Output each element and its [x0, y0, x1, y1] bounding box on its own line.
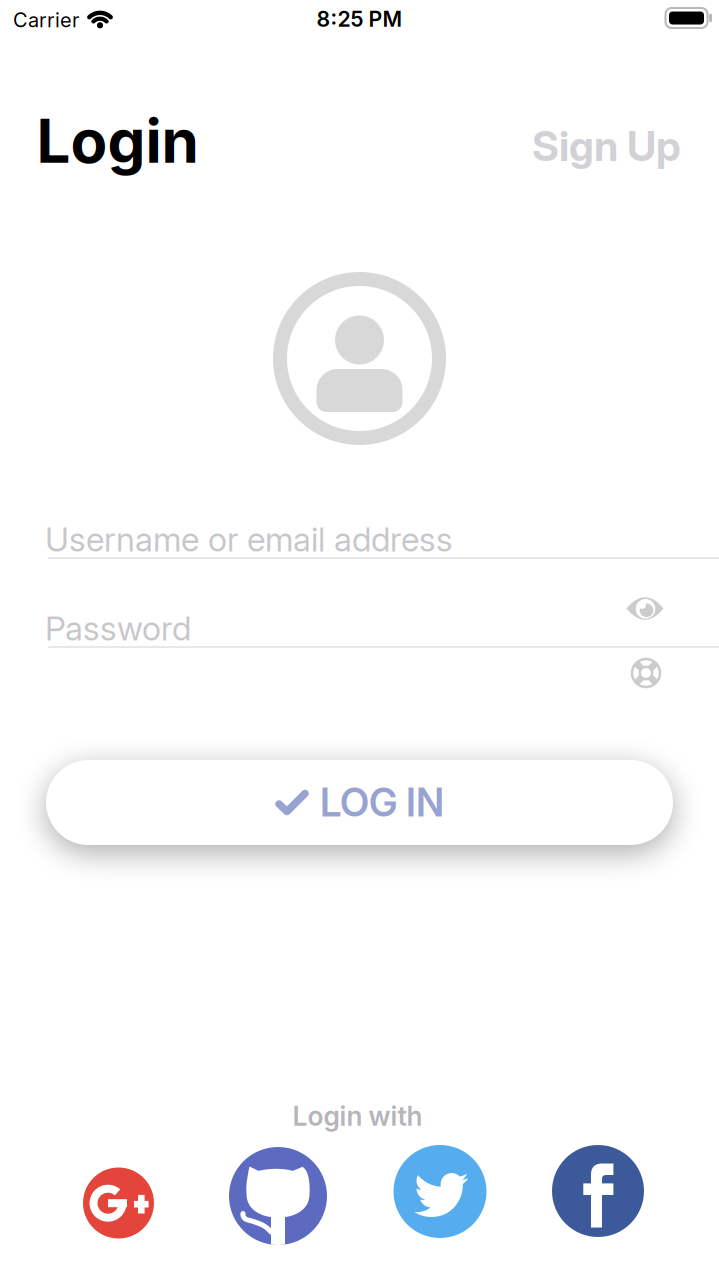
button[interactable]: Username or email address — [48, 497, 719, 559]
button[interactable]: Sign Up — [0, 121, 681, 171]
staticText: Login with — [292, 1100, 422, 1132]
staticText: Password — [45, 609, 191, 648]
button[interactable] — [229, 1147, 327, 1245]
staticText: 8:25 PM — [316, 6, 402, 32]
button[interactable]: Password — [48, 586, 719, 648]
staticText: LOG IN — [320, 780, 444, 825]
button[interactable] — [552, 1145, 644, 1237]
button[interactable] — [393, 1145, 486, 1238]
button[interactable] — [83, 1167, 154, 1238]
button[interactable] — [626, 597, 664, 621]
button[interactable]: LOG IN — [46, 760, 673, 845]
staticText: Login — [36, 106, 198, 176]
staticText: Carrier — [13, 8, 79, 32]
button[interactable] — [631, 658, 661, 688]
staticText: Username or email address — [45, 520, 453, 559]
staticText: Sign Up — [532, 122, 681, 170]
